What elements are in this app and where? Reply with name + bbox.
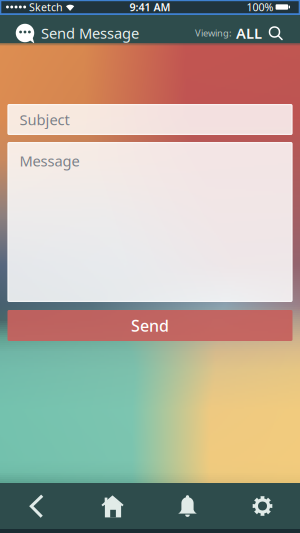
button[interactable]: Settings (225, 483, 300, 529)
staticText: Send (131, 315, 169, 336)
button[interactable]: Home (75, 483, 150, 529)
staticText: Subject (19, 110, 69, 129)
button[interactable]: Back (0, 483, 75, 529)
button[interactable]: Send (7, 310, 292, 341)
staticText: Sketch (29, 0, 63, 14)
staticText: Message (19, 151, 79, 170)
button[interactable]: Viewing: (195, 23, 262, 43)
staticText: Viewing: (195, 27, 232, 39)
button[interactable]: Search (262, 25, 283, 40)
button[interactable]: Notifications (150, 483, 225, 529)
staticText: ALL (236, 23, 262, 43)
staticText: 9:41 AM (129, 0, 170, 14)
button[interactable]: Subject (7, 104, 292, 135)
staticText: Send Message (41, 23, 139, 43)
staticText: 100% (247, 0, 274, 14)
button[interactable]: Message (7, 142, 292, 302)
